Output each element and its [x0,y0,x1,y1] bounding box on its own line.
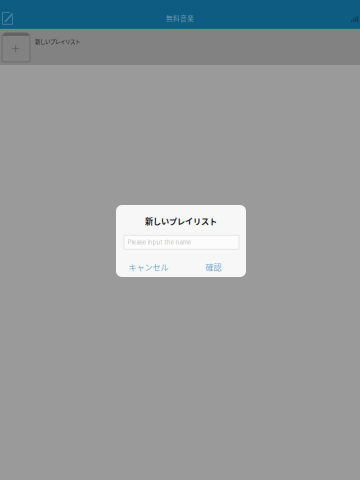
button[interactable]: New playlist [0,0,18,29]
button[interactable]: 確認 [181,257,246,277]
button[interactable]: 新しいプレイリスト [0,29,360,65]
staticText: 無料音楽 [166,13,194,23]
button[interactable]: Now playing [345,0,360,29]
staticText: Please input the name [127,239,190,246]
staticText: 確認 [205,261,221,273]
button[interactable]: キャンセル [116,257,181,277]
staticText: キャンセル [128,261,168,273]
staticText: 新しいプレイリスト [35,37,80,45]
staticText: 新しいプレイリスト [145,215,217,227]
